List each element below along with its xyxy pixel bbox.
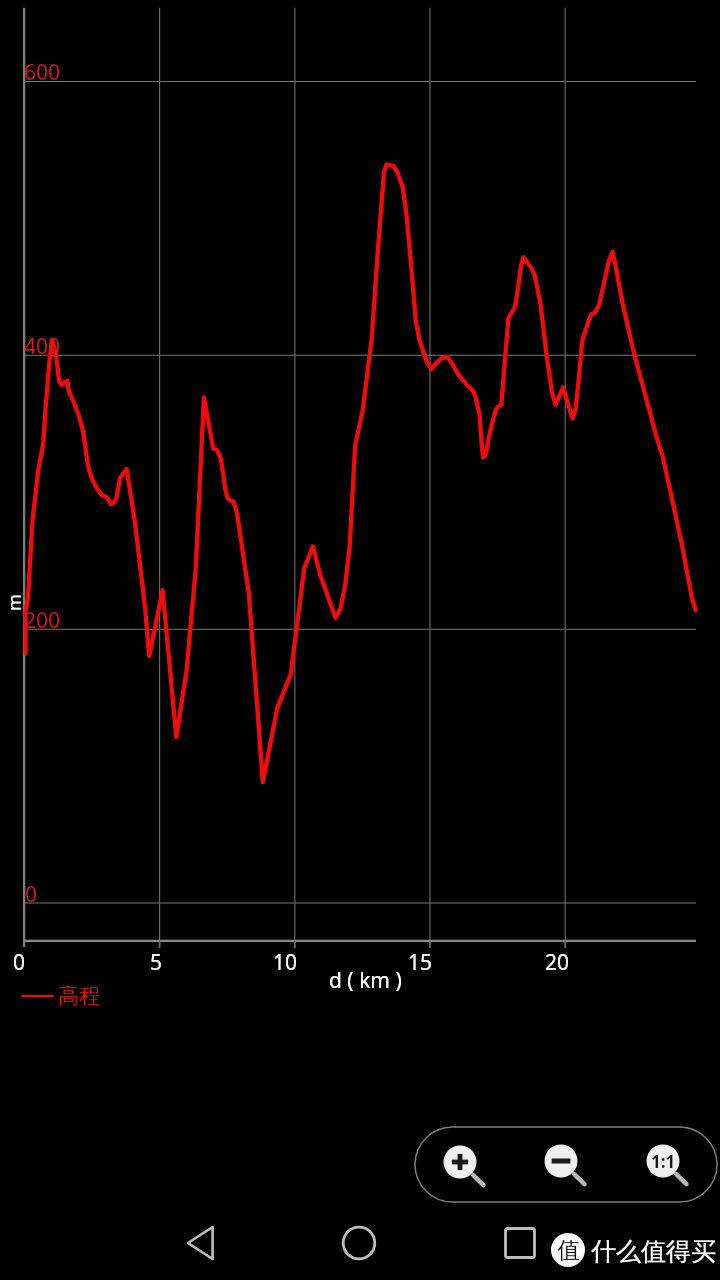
button[interactable]: Back [160,1213,240,1273]
staticText: 高程 [58,983,100,1009]
staticText: 400 [24,332,61,361]
staticText: 0 [25,880,38,909]
button[interactable]: Zoom in [434,1136,486,1188]
button[interactable]: Zoom out [535,1135,587,1187]
button[interactable]: Elevation profile chart [0,0,720,1280]
staticText: 1:1 [651,1150,676,1173]
staticText: 0 [13,948,26,977]
button[interactable]: Recents [480,1213,560,1273]
staticText: 200 [24,606,61,635]
button[interactable]: Actual size [637,1135,689,1187]
staticText: 什么值得买 [591,1236,716,1267]
staticText: m [2,594,27,611]
staticText: 5 [150,948,163,977]
staticText: 15 [408,948,433,977]
staticText: d ( km ) [329,966,402,995]
staticText: 10 [273,948,298,977]
staticText: 值 [557,1236,580,1265]
staticText: 20 [545,948,570,977]
staticText: 600 [24,58,61,87]
button[interactable]: Home [319,1213,399,1273]
